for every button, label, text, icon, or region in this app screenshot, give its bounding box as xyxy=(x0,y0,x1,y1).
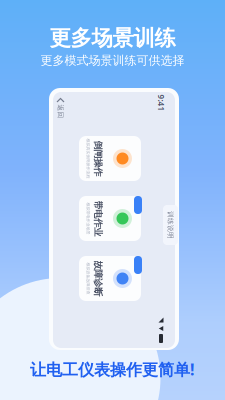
staticText: 返回 xyxy=(53,107,67,116)
staticText: 模拟带电作业场景 xyxy=(72,216,104,221)
staticText: 更多场景训练 xyxy=(49,25,175,51)
staticText: 训练说明 xyxy=(156,221,184,229)
staticText: 模拟设备故障排查 xyxy=(72,276,104,281)
staticText: 倒闸操作 xyxy=(80,153,116,164)
staticText: 让电工仪表操作更简单! xyxy=(30,359,195,380)
staticText: 更多模式场景训练可供选择 xyxy=(40,53,184,68)
staticText: 9:41 xyxy=(152,98,169,108)
staticText: 带电作业 xyxy=(80,213,116,224)
staticText: 故障诊断 xyxy=(80,273,116,284)
staticText: 模拟真实倒闸操作流程 xyxy=(68,156,108,161)
